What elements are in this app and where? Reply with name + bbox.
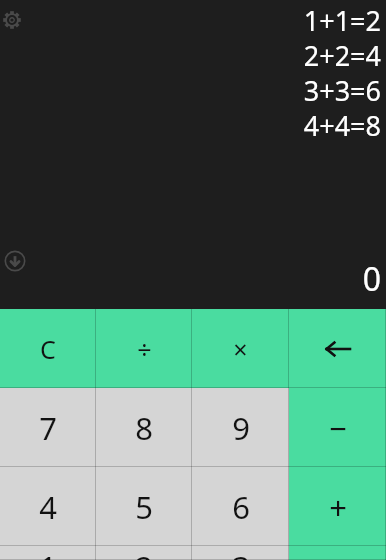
staticText: 6 (232, 486, 250, 528)
button[interactable]: 7 (0, 388, 96, 467)
button[interactable]: C (0, 309, 96, 388)
button[interactable]: 4 (0, 467, 96, 546)
button[interactable]: × (192, 309, 289, 388)
button[interactable]: = (289, 546, 386, 560)
staticText: 4 (39, 486, 57, 528)
staticText: − (329, 407, 347, 449)
button[interactable]: 1 (0, 546, 96, 560)
button[interactable]: 6 (192, 467, 289, 546)
staticText: 3+3=6 (303, 72, 381, 107)
button[interactable]: 3+3=6 (303, 72, 381, 107)
button[interactable]: 5 (96, 467, 192, 546)
staticText: 4+4=8 (303, 107, 381, 142)
button[interactable]: Show history (4, 250, 26, 272)
staticText: 3 (232, 546, 250, 560)
button[interactable]: 8 (96, 388, 192, 467)
staticText: 8 (135, 407, 153, 449)
button[interactable]: 9 (192, 388, 289, 467)
button[interactable]: 3 (192, 546, 289, 560)
button[interactable]: + (289, 467, 386, 546)
button[interactable]: 1+1=2 (303, 2, 381, 37)
staticText: ÷ (137, 332, 152, 366)
staticText: 1 (39, 546, 57, 560)
staticText: 2 (135, 546, 153, 560)
staticText: 2+2=4 (303, 37, 381, 72)
staticText: × (233, 332, 248, 366)
staticText: 7 (39, 407, 57, 449)
button[interactable]: − (289, 388, 386, 467)
button[interactable]: 2+2=4 (303, 37, 381, 72)
button[interactable]: Backspace (289, 309, 386, 388)
staticText: 0 (362, 257, 381, 301)
staticText: = (329, 546, 347, 560)
staticText: 9 (232, 407, 250, 449)
button[interactable]: Settings (1, 9, 23, 31)
staticText: 5 (135, 486, 153, 528)
staticText: C (40, 332, 56, 366)
staticText: 1+1=2 (303, 2, 381, 37)
button[interactable]: 4+4=8 (303, 107, 381, 142)
staticText: + (329, 486, 347, 528)
button[interactable]: 2 (96, 546, 192, 560)
button[interactable]: ÷ (96, 309, 192, 388)
